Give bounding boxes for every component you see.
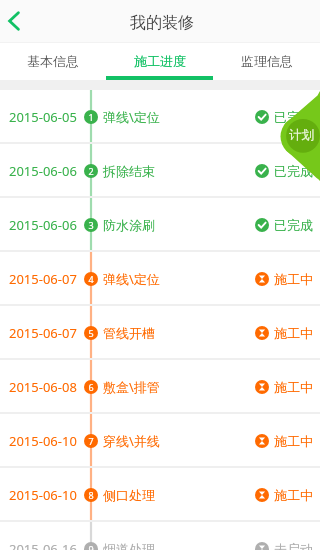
staticText: 施工中 (274, 271, 313, 287)
staticText: 防水涂刷 (103, 217, 155, 233)
staticText: 1 (88, 111, 94, 123)
staticText: 已完成 (274, 109, 313, 125)
staticText: 管线开槽 (103, 325, 155, 341)
staticText: 计划 (289, 127, 314, 143)
button[interactable]: Back (0, 0, 28, 42)
staticText: 施工进度 (134, 53, 186, 69)
button[interactable]: 2015-06-08 (0, 360, 320, 414)
button[interactable]: 2015-06-07 (0, 252, 320, 306)
staticText: 9 (88, 543, 94, 550)
staticText: 施工中 (274, 379, 313, 395)
staticText: 基本信息 (27, 53, 79, 69)
button[interactable]: 监理信息 (213, 43, 320, 80)
staticText: 2015-06-10 (9, 486, 77, 504)
button[interactable]: 施工进度 (106, 43, 213, 80)
button[interactable]: 基本信息 (0, 43, 106, 80)
staticText: 穿线\并线 (103, 432, 160, 450)
button[interactable]: 2015-06-06 (0, 144, 320, 198)
staticText: 敷盒\排管 (103, 378, 160, 396)
staticText: 拆除结束 (103, 163, 155, 179)
button[interactable]: 2015-06-05 (0, 90, 320, 144)
staticText: 2015-06-05 (9, 108, 77, 126)
staticText: 已完成 (274, 217, 313, 233)
staticText: 烟道处理 (103, 541, 155, 550)
staticText: 施工中 (274, 325, 313, 341)
staticText: 7 (88, 435, 94, 447)
staticText: 2015-06-10 (9, 432, 77, 450)
staticText: 施工中 (274, 487, 313, 503)
button[interactable]: 2015-06-10 (0, 414, 320, 468)
staticText: 2015-06-08 (9, 378, 77, 396)
staticText: 施工中 (274, 433, 313, 449)
staticText: 2015-06-07 (9, 270, 77, 288)
staticText: 2 (88, 165, 94, 177)
staticText: 4 (88, 273, 94, 285)
staticText: 弹线\定位 (103, 270, 160, 288)
button[interactable]: 2015-06-07 (0, 306, 320, 360)
staticText: 未启动 (274, 541, 313, 550)
staticText: 5 (88, 327, 94, 339)
staticText: 已完成 (274, 163, 313, 179)
button[interactable]: 2015-06-16 (0, 522, 320, 550)
staticText: 2015-06-07 (9, 324, 77, 342)
button[interactable]: 2015-06-10 (0, 468, 320, 522)
staticText: 2015-06-16 (9, 540, 77, 550)
staticText: 2015-06-06 (9, 216, 77, 234)
staticText: 监理信息 (241, 53, 293, 69)
staticText: 6 (88, 381, 94, 393)
button[interactable]: 2015-06-06 (0, 198, 320, 252)
staticText: 侧口处理 (103, 487, 155, 503)
staticText: 3 (88, 219, 94, 231)
staticText: 弹线\定位 (103, 108, 160, 126)
staticText: 我的装修 (130, 13, 194, 33)
staticText: 8 (88, 489, 94, 501)
button[interactable]: 计划 (284, 118, 320, 154)
staticText: 2015-06-06 (9, 162, 77, 180)
